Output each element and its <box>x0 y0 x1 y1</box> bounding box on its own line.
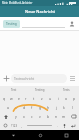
staticText: ?123 <box>11 124 18 128</box>
staticText: b <box>47 114 50 119</box>
button[interactable]: k <box>60 103 68 112</box>
staticText: x <box>23 114 25 119</box>
button[interactable]: l <box>68 103 76 112</box>
staticText: z <box>41 96 43 101</box>
button[interactable]: x <box>20 112 28 121</box>
staticText: Neue Nachricht <box>25 9 55 14</box>
button[interactable]: a <box>3 103 12 112</box>
button[interactable]: Textnachricht <box>11 74 67 83</box>
staticText: Testing <box>35 88 45 92</box>
button[interactable]: Startbildschirm <box>27 130 53 140</box>
staticText: Test <box>11 88 17 92</box>
staticText: g <box>39 105 42 110</box>
button[interactable]: Kontakte <box>67 19 76 28</box>
staticText: t <box>33 96 35 101</box>
button[interactable]: Spracheingabe <box>60 121 68 130</box>
staticText: u <box>49 96 52 101</box>
button[interactable]: v <box>36 112 44 121</box>
button[interactable]: y <box>12 112 20 121</box>
staticText: . <box>57 124 58 128</box>
staticText: i <box>58 96 59 101</box>
button[interactable]: Anhang hinzufügen <box>2 74 11 83</box>
staticText: l <box>72 105 73 110</box>
button[interactable]: t <box>30 93 38 103</box>
staticText: f <box>31 105 33 110</box>
staticText: o <box>65 96 68 101</box>
staticText: j <box>56 105 57 110</box>
staticText: a <box>7 105 9 110</box>
button[interactable]: d <box>20 103 28 112</box>
staticText: p <box>73 96 76 101</box>
staticText: c <box>31 114 33 119</box>
button[interactable]: f <box>28 103 36 112</box>
button[interactable]: o <box>62 93 70 103</box>
button[interactable]: q <box>1 93 8 103</box>
button[interactable]: i <box>54 93 62 103</box>
button[interactable]: Sprache wechseln <box>1 121 9 130</box>
button[interactable]: n <box>52 112 60 121</box>
button[interactable]: Testing <box>3 20 20 28</box>
staticText: Textnachricht <box>14 77 35 81</box>
button[interactable]: e <box>15 93 22 103</box>
button[interactable]: Löschen <box>68 112 79 121</box>
staticText: w <box>10 96 13 101</box>
button[interactable]: , <box>19 121 24 130</box>
button[interactable]: w <box>8 93 15 103</box>
button[interactable]: b <box>44 112 52 121</box>
button[interactable]: Übersicht <box>53 130 79 140</box>
button[interactable]: Testing <box>27 86 53 93</box>
button[interactable]: Test <box>0 86 27 93</box>
button[interactable]: Zurück <box>0 130 27 140</box>
button[interactable]: Senden <box>68 74 77 83</box>
button[interactable]: g <box>36 103 44 112</box>
button[interactable]: Leertaste <box>24 121 55 130</box>
button[interactable]: Umschalt <box>0 112 12 121</box>
button[interactable]: u <box>46 93 54 103</box>
staticText: n <box>55 114 58 119</box>
staticText: Testing <box>6 22 17 26</box>
button[interactable]: r <box>22 93 30 103</box>
staticText: h <box>47 105 50 110</box>
staticText: q <box>3 96 6 101</box>
staticText: s <box>15 105 17 110</box>
button[interactable]: z <box>38 93 46 103</box>
staticText: d <box>23 105 26 110</box>
staticText: m <box>62 114 66 119</box>
staticText: Tests <box>63 88 70 92</box>
button[interactable]: p <box>70 93 78 103</box>
button[interactable]: m <box>60 112 68 121</box>
staticText: y <box>15 114 17 119</box>
button[interactable]: ?123 <box>9 121 19 130</box>
staticText: r <box>25 96 27 101</box>
staticText: v <box>39 114 41 119</box>
staticText: Mein Mobilfunk-Anbieter <box>2 1 33 5</box>
staticText: e <box>18 96 20 101</box>
button[interactable]: s <box>12 103 20 112</box>
staticText: k <box>63 105 65 110</box>
button[interactable]: j <box>52 103 60 112</box>
staticText: , <box>21 124 22 128</box>
button[interactable]: Tests <box>53 86 79 93</box>
button[interactable]: c <box>28 112 36 121</box>
button[interactable]: Eingabe <box>68 121 78 130</box>
button[interactable]: h <box>44 103 52 112</box>
